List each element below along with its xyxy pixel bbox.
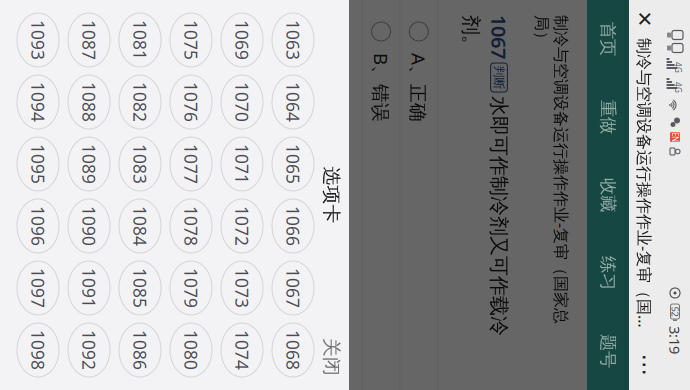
button[interactable]: A、正确 (150, 103, 540, 140)
button[interactable]: 1077 (287, 328, 341, 370)
staticText: 选项卡 (316, 197, 373, 220)
staticText: B、错误 (203, 146, 272, 171)
staticText: 1074 (480, 286, 520, 309)
staticText: A、正确 (203, 109, 272, 134)
staticText: 1063 (170, 235, 210, 258)
button[interactable]: 1074 (473, 277, 527, 319)
button[interactable]: 1075 (163, 328, 217, 370)
button[interactable]: 1068 (473, 226, 527, 268)
button[interactable]: 1070 (225, 277, 279, 319)
staticText: 1075 (170, 337, 210, 360)
staticText: 1064 (232, 235, 272, 258)
button[interactable]: 1069 (163, 277, 217, 319)
button[interactable]: 关闭 (474, 191, 540, 226)
button[interactable]: 1065 (287, 226, 341, 268)
button[interactable]: 1064 (225, 226, 279, 268)
staticText: 水即可作制冷剂又可作载冷 (246, 29, 486, 53)
staticText: 剂。 (165, 57, 205, 81)
staticText: 1070 (232, 286, 272, 309)
button[interactable]: 1071 (287, 277, 341, 319)
staticText: 1067 (165, 28, 209, 54)
button[interactable]: 1063 (163, 226, 217, 268)
staticText: 1071 (294, 286, 334, 309)
staticText: 1065 (294, 235, 334, 258)
staticText: 1069 (170, 286, 210, 309)
button[interactable]: B、错误 (150, 140, 540, 177)
button[interactable]: 1076 (225, 328, 279, 370)
staticText: 1068 (480, 235, 520, 258)
button[interactable]: 1080 (473, 328, 527, 370)
staticText: 1077 (294, 337, 334, 360)
staticText: 1076 (232, 337, 272, 360)
staticText: 关闭 (488, 197, 526, 220)
staticText: 判断 (215, 34, 239, 48)
